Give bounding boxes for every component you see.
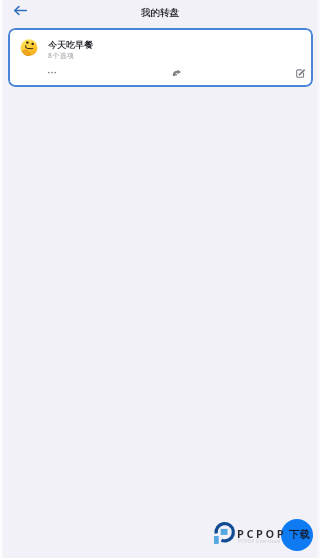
staticText: PCPOP: [237, 526, 287, 541]
button[interactable]: More options: [42, 62, 62, 82]
button[interactable]: Back: [14, 4, 27, 17]
staticText: 我的转盘: [0, 7, 320, 19]
staticText: 今天吃早餐: [48, 39, 93, 50]
button[interactable]: 今天吃早餐: [8, 28, 313, 87]
button[interactable]: Share: [167, 63, 187, 83]
button[interactable]: Edit: [290, 63, 310, 83]
staticText: 下载: [289, 528, 310, 541]
staticText: 8个选项: [48, 51, 75, 60]
staticText: PCPOP Download: [238, 538, 281, 544]
